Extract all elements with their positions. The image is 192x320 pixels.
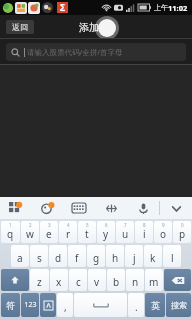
staticText: f xyxy=(75,251,79,265)
staticText: m xyxy=(149,275,159,289)
staticText: h xyxy=(112,251,119,265)
staticText: 2 xyxy=(29,222,32,228)
button[interactable]: 3 xyxy=(40,221,58,243)
button[interactable]: c xyxy=(69,269,87,291)
button[interactable]: Keyboard layout xyxy=(63,197,95,219)
staticText: 8 xyxy=(143,222,146,228)
button[interactable]: v xyxy=(88,269,106,291)
staticText: 11:02 xyxy=(168,3,188,13)
button[interactable]: l xyxy=(163,245,181,267)
button[interactable]: Space xyxy=(74,293,127,317)
staticText: a xyxy=(17,251,23,265)
button[interactable]: 符 xyxy=(1,293,20,317)
button[interactable]: n xyxy=(126,269,144,291)
button[interactable]: h xyxy=(106,245,124,267)
staticText: . xyxy=(135,300,138,314)
staticText: 符 xyxy=(6,300,15,311)
staticText: c xyxy=(76,275,81,289)
button[interactable]: Hide keyboard xyxy=(160,197,192,219)
button[interactable]: Backspace xyxy=(164,269,191,291)
button[interactable]: d xyxy=(49,245,67,267)
staticText: q xyxy=(7,227,14,241)
button[interactable]: , xyxy=(57,293,73,317)
button[interactable]: 123 xyxy=(21,293,39,317)
button[interactable]: Apps xyxy=(0,197,31,219)
button[interactable]: Shift xyxy=(1,269,29,291)
staticText: 上午 xyxy=(154,3,168,12)
staticText: 3 xyxy=(48,222,51,228)
staticText: 4 xyxy=(67,222,70,228)
button[interactable]: 5 xyxy=(78,221,96,243)
button[interactable]: 7 xyxy=(116,221,134,243)
staticText: g xyxy=(93,251,100,265)
button[interactable]: 搜索 xyxy=(166,293,191,317)
button[interactable]: a xyxy=(11,245,29,267)
button[interactable]: z xyxy=(30,269,49,291)
button[interactable]: k xyxy=(144,245,162,267)
staticText: o xyxy=(160,227,167,241)
button[interactable]: 6 xyxy=(97,221,115,243)
staticText: t xyxy=(85,227,89,241)
button[interactable]: Emoji xyxy=(31,197,63,219)
staticText: i xyxy=(143,227,146,241)
staticText: k xyxy=(150,251,156,265)
staticText: 返回 xyxy=(12,22,28,32)
button[interactable]: 4 xyxy=(59,221,77,243)
staticText: 7 xyxy=(124,222,127,228)
staticText: l xyxy=(171,251,174,265)
button[interactable]: Resize keyboard xyxy=(95,197,127,219)
staticText: u xyxy=(122,227,129,241)
button[interactable]: 返回 xyxy=(6,20,34,34)
button[interactable]: 英 xyxy=(145,293,165,317)
staticText: 0 xyxy=(181,222,184,228)
staticText: 搜索 xyxy=(171,300,187,310)
staticText: 请输入股票代码/全拼/首字母 xyxy=(27,47,123,57)
staticText: w xyxy=(26,227,34,241)
button[interactable]: m xyxy=(145,269,163,291)
button[interactable]: 8 xyxy=(135,221,153,243)
staticText: j xyxy=(133,251,136,265)
staticText: v xyxy=(94,275,100,289)
staticText: p xyxy=(179,227,186,241)
staticText: x xyxy=(56,275,62,289)
staticText: 123 xyxy=(24,300,37,310)
staticText: y xyxy=(103,227,109,241)
staticText: 添加 xyxy=(79,21,99,34)
button[interactable]: j xyxy=(125,245,143,267)
staticText: z xyxy=(37,275,42,289)
button[interactable]: g xyxy=(87,245,105,267)
button[interactable]: f xyxy=(68,245,86,267)
button[interactable]: 9 xyxy=(154,221,172,243)
staticText: d xyxy=(55,251,62,265)
staticText: 9 xyxy=(162,222,165,228)
button[interactable]: Switch input method xyxy=(40,293,56,317)
staticText: , xyxy=(64,300,67,314)
button[interactable]: . xyxy=(128,293,144,317)
button[interactable]: s xyxy=(30,245,48,267)
staticText: 英 xyxy=(151,300,160,311)
staticText: 1 xyxy=(9,222,12,228)
staticText: b xyxy=(113,275,120,289)
button[interactable]: 2 xyxy=(21,221,39,243)
staticText: 5 xyxy=(86,222,89,228)
button[interactable]: Search xyxy=(6,43,186,61)
staticText: r xyxy=(66,227,71,241)
staticText: s xyxy=(37,251,42,265)
button[interactable]: x xyxy=(50,269,68,291)
other: Search xyxy=(11,48,20,57)
staticText: 6 xyxy=(105,222,108,228)
button[interactable]: 0 xyxy=(173,221,191,243)
staticText: n xyxy=(132,275,139,289)
staticText: e xyxy=(46,227,52,241)
button[interactable]: Voice input xyxy=(127,197,159,219)
button[interactable]: 1 xyxy=(1,221,20,243)
button[interactable]: b xyxy=(107,269,125,291)
